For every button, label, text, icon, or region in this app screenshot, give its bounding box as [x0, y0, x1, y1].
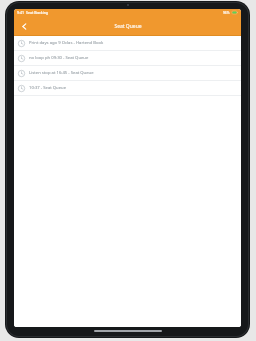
staticText: no loop ph 09:30 - Seat Queue: [29, 55, 89, 61]
button[interactable]: no loop ph 09:30 - Seat Queue: [14, 51, 241, 65]
staticText: 10:37 - Seat Queue: [29, 85, 67, 91]
button[interactable]: 10:37 - Seat Queue: [14, 81, 241, 95]
staticText: 9:41: [17, 10, 24, 15]
staticText: Seat Booking: [26, 10, 49, 15]
staticText: Listen stop at 16:45 - Seat Queue: [29, 70, 94, 76]
button[interactable]: Print days ago 9 Oclas - Hartend Book: [14, 36, 241, 50]
staticText: Seat Queue: [114, 23, 142, 30]
staticText: Print days ago 9 Oclas - Hartend Book: [29, 40, 104, 46]
button[interactable]: Listen stop at 16:45 - Seat Queue: [14, 66, 241, 80]
button[interactable]: Back: [16, 18, 32, 34]
staticText: 96%: [223, 11, 230, 15]
